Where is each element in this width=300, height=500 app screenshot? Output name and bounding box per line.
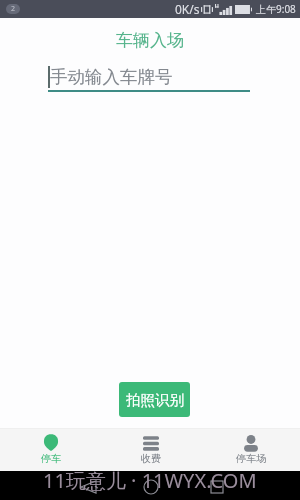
button[interactable]: 停车	[0, 429, 100, 471]
staticText: 11玩意儿 · 11WYX.COM	[43, 467, 257, 494]
staticText: 停车场	[236, 452, 266, 465]
staticText: 拍照识别	[126, 391, 184, 409]
button[interactable]: 拍照识别	[119, 382, 190, 417]
staticText: 收费	[141, 452, 161, 465]
staticText: 停车	[41, 452, 61, 465]
staticText: 手动输入车牌号	[50, 66, 173, 88]
staticText: 车辆入场	[116, 30, 184, 51]
staticText: 0K/s	[175, 1, 200, 17]
button[interactable]: 收费	[100, 429, 200, 471]
button[interactable]: 停车场	[200, 429, 300, 471]
staticText: 上午9:08	[256, 2, 296, 16]
staticText: 2	[11, 4, 16, 14]
